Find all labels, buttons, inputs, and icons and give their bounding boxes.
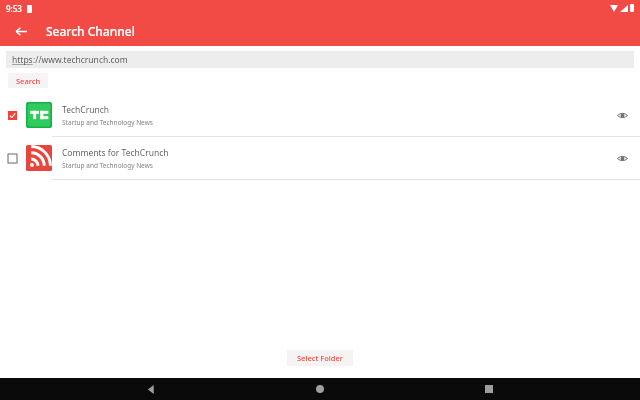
button[interactable]: Unchecked [0,137,640,179]
staticText: https [12,54,33,66]
staticText: Search [16,76,41,86]
button[interactable]: Preview [612,105,632,125]
staticText: Select Folder [297,353,343,363]
staticText: Startup and Technology News [62,161,153,170]
staticText: 9:53 [6,3,22,14]
button[interactable]: Back [10,20,32,42]
staticText: Search Channel [46,23,135,39]
staticText: TechCrunch [62,104,109,116]
button[interactable]: Back [133,378,169,400]
button[interactable]: https [6,51,634,68]
button[interactable]: Preview [612,148,632,168]
button[interactable]: Recent apps [471,378,507,400]
button[interactable]: Home [302,378,338,400]
button[interactable]: Search [8,73,48,88]
staticText: Comments for TechCrunch [62,147,169,159]
button[interactable]: Checked [0,94,640,136]
button[interactable]: Select Folder [287,350,353,366]
button[interactable]: Unchecked [5,151,19,165]
staticText: ://www.techcrunch.com [33,54,128,66]
staticText: Startup and Technology News [62,118,153,127]
button[interactable]: Checked [5,108,19,122]
